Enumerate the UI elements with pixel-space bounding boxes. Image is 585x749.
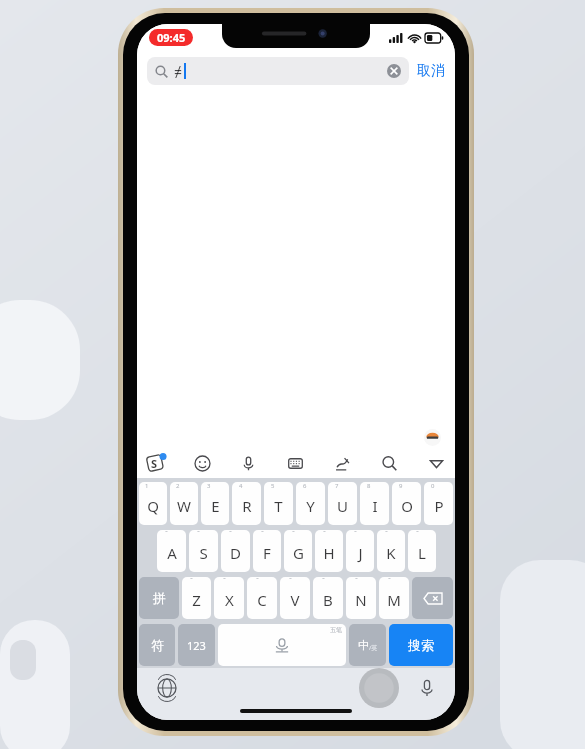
- staticText: ˇ: [292, 530, 295, 539]
- staticText: 7: [335, 482, 339, 490]
- button[interactable]: 6: [296, 482, 325, 525]
- button[interactable]: 0: [424, 482, 453, 525]
- staticText: ˇ: [197, 530, 200, 539]
- staticText: 拼: [153, 590, 166, 606]
- button[interactable]: ˇ: [284, 530, 312, 572]
- staticText: E: [211, 496, 220, 516]
- button[interactable]: Emoji: [191, 452, 213, 474]
- staticText: ˇ: [165, 530, 168, 539]
- button[interactable]: ˇ: [346, 577, 376, 619]
- button[interactable]: 3: [201, 482, 229, 525]
- staticText: ˇ: [355, 577, 358, 586]
- button[interactable]: Keyboard layout: [284, 452, 306, 474]
- button[interactable]: Clear: [387, 64, 401, 78]
- button[interactable]: 8: [360, 482, 389, 525]
- staticText: F: [263, 543, 271, 563]
- staticText: ˇ: [289, 577, 292, 586]
- staticText: W: [177, 496, 191, 516]
- staticText: 1: [145, 482, 149, 490]
- staticText: I: [372, 496, 378, 516]
- button[interactable]: ˇ: [247, 577, 277, 619]
- button[interactable]: Sogou input: [145, 452, 167, 474]
- staticText: Z: [192, 590, 201, 610]
- button[interactable]: ˇ: [313, 577, 343, 619]
- button[interactable]: 五笔: [218, 624, 346, 666]
- button[interactable]: ˇ: [157, 530, 186, 572]
- staticText: K: [386, 543, 396, 563]
- button[interactable]: ≠: [147, 57, 409, 85]
- button[interactable]: 123: [178, 624, 215, 666]
- button[interactable]: ˇ: [377, 530, 405, 572]
- staticText: G: [293, 543, 304, 563]
- staticText: 9: [399, 482, 403, 490]
- button[interactable]: 拼: [139, 577, 179, 619]
- staticText: ˇ: [385, 530, 388, 539]
- staticText: L: [418, 543, 426, 563]
- button[interactable]: 4: [232, 482, 261, 525]
- button[interactable]: ˇ: [189, 530, 218, 572]
- staticText: N: [355, 590, 367, 610]
- staticText: 符: [151, 637, 164, 653]
- button[interactable]: Dictation: [417, 678, 437, 698]
- button[interactable]: Sticker: [424, 429, 441, 446]
- staticText: 09:45: [157, 30, 186, 45]
- staticText: 4: [239, 482, 243, 490]
- staticText: ˇ: [322, 577, 325, 586]
- staticText: M: [387, 590, 401, 610]
- staticText: 取消: [417, 62, 445, 80]
- staticText: 5: [271, 482, 275, 490]
- button[interactable]: 搜索: [389, 624, 453, 666]
- staticText: ˇ: [256, 577, 259, 586]
- button[interactable]: ˇ: [214, 577, 244, 619]
- staticText: ˇ: [223, 577, 226, 586]
- button[interactable]: Backspace: [412, 577, 453, 619]
- staticText: U: [337, 496, 348, 516]
- staticText: A: [167, 543, 177, 563]
- staticText: 3: [207, 482, 211, 490]
- staticText: O: [401, 496, 413, 516]
- staticText: 中: [358, 638, 369, 652]
- staticText: 0: [431, 482, 435, 490]
- button[interactable]: 7: [328, 482, 357, 525]
- staticText: C: [257, 590, 267, 610]
- button[interactable]: 取消: [417, 62, 445, 80]
- staticText: ˇ: [261, 530, 264, 539]
- button[interactable]: Search: [378, 452, 400, 474]
- staticText: V: [290, 590, 300, 610]
- staticText: ˇ: [354, 530, 357, 539]
- staticText: S: [151, 456, 158, 471]
- button[interactable]: 中: [349, 624, 386, 666]
- button[interactable]: ˇ: [221, 530, 250, 572]
- staticText: H: [323, 543, 335, 563]
- button[interactable]: Handwriting: [331, 452, 353, 474]
- staticText: P: [434, 496, 444, 516]
- button[interactable]: 符: [139, 624, 175, 666]
- staticText: 搜索: [408, 637, 434, 653]
- button[interactable]: ˇ: [379, 577, 409, 619]
- button[interactable]: 9: [392, 482, 421, 525]
- staticText: B: [323, 590, 333, 610]
- button[interactable]: Collapse keyboard: [425, 452, 447, 474]
- staticText: S: [199, 543, 208, 563]
- button[interactable]: ˇ: [280, 577, 310, 619]
- button[interactable]: 2: [170, 482, 198, 525]
- button[interactable]: Switch language: [157, 678, 177, 698]
- button[interactable]: 1: [139, 482, 167, 525]
- staticText: T: [274, 496, 283, 516]
- button[interactable]: ˇ: [315, 530, 343, 572]
- staticText: X: [225, 590, 234, 610]
- button[interactable]: ˇ: [253, 530, 281, 572]
- staticText: ˇ: [388, 577, 391, 586]
- button[interactable]: ˇ: [182, 577, 211, 619]
- staticText: 6: [303, 482, 307, 490]
- staticText: Y: [306, 496, 315, 516]
- button[interactable]: Voice input: [237, 452, 259, 474]
- staticText: D: [230, 543, 241, 563]
- staticText: ˇ: [323, 530, 326, 539]
- button[interactable]: ˇ: [346, 530, 374, 572]
- staticText: ˇ: [416, 530, 419, 539]
- button[interactable]: AssistiveTouch: [359, 668, 399, 708]
- button[interactable]: ˇ: [408, 530, 436, 572]
- button[interactable]: 5: [264, 482, 293, 525]
- staticText: 8: [367, 482, 371, 490]
